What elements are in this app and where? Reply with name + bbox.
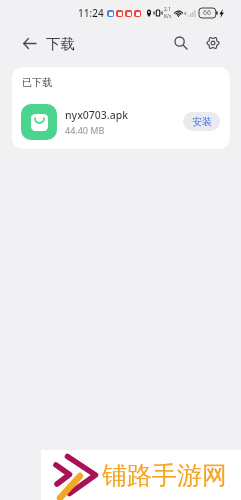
button[interactable]: Settings [198,28,228,58]
staticText: nyx0703.apk [65,108,129,122]
button[interactable]: nyx0703.apk [12,99,230,144]
button[interactable]: Back [14,28,44,58]
button[interactable]: 安装 [183,112,220,131]
staticText: 66 [203,8,212,18]
staticText: 2.1 [164,6,172,13]
staticText: 下载 [46,35,75,53]
staticText: 44.40 MB [65,124,105,136]
staticText: x [184,10,187,17]
staticText: 安装 [192,115,212,128]
button[interactable]: Search [166,28,196,58]
staticText: K/s [164,13,172,20]
staticText: 11:24 [78,6,104,20]
staticText: 已下载 [22,76,52,89]
staticText: 铺路手游网 [102,460,227,491]
